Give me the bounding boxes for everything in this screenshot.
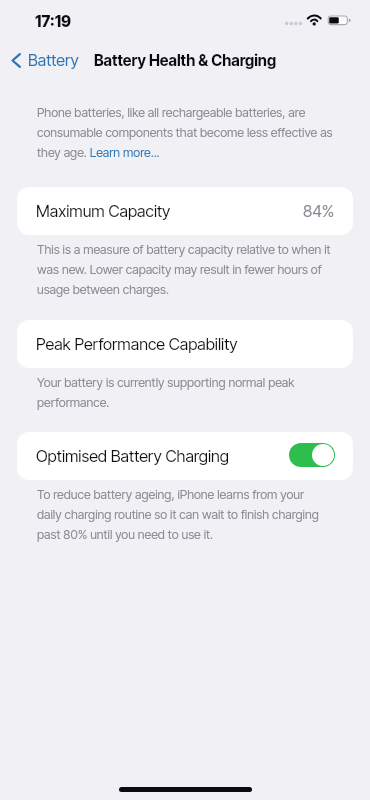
button[interactable]: Optimised Battery Charging (17, 432, 353, 480)
staticText: To reduce battery ageing, iPhone learns … (37, 483, 331, 543)
button[interactable]: Maximum Capacity (17, 187, 353, 235)
staticText: Phone batteries, like all rechargeable b… (37, 101, 338, 161)
staticText: Peak Performance Capability (36, 334, 238, 354)
button[interactable]: Optimised Battery Charging toggle (289, 443, 335, 467)
staticText: This is a measure of battery capacity re… (37, 238, 331, 298)
button[interactable]: Battery (0, 44, 89, 76)
staticText: Optimised Battery Charging (36, 446, 229, 466)
staticText: 17:19 (35, 12, 72, 31)
staticText: Maximum Capacity (36, 201, 171, 221)
staticText: Battery Health & Charging (94, 51, 277, 70)
staticText: Your battery is currently supporting nor… (37, 371, 331, 411)
staticText: 84% (303, 201, 335, 221)
button[interactable]: Peak Performance Capability (17, 320, 353, 368)
staticText: Battery (28, 50, 79, 70)
